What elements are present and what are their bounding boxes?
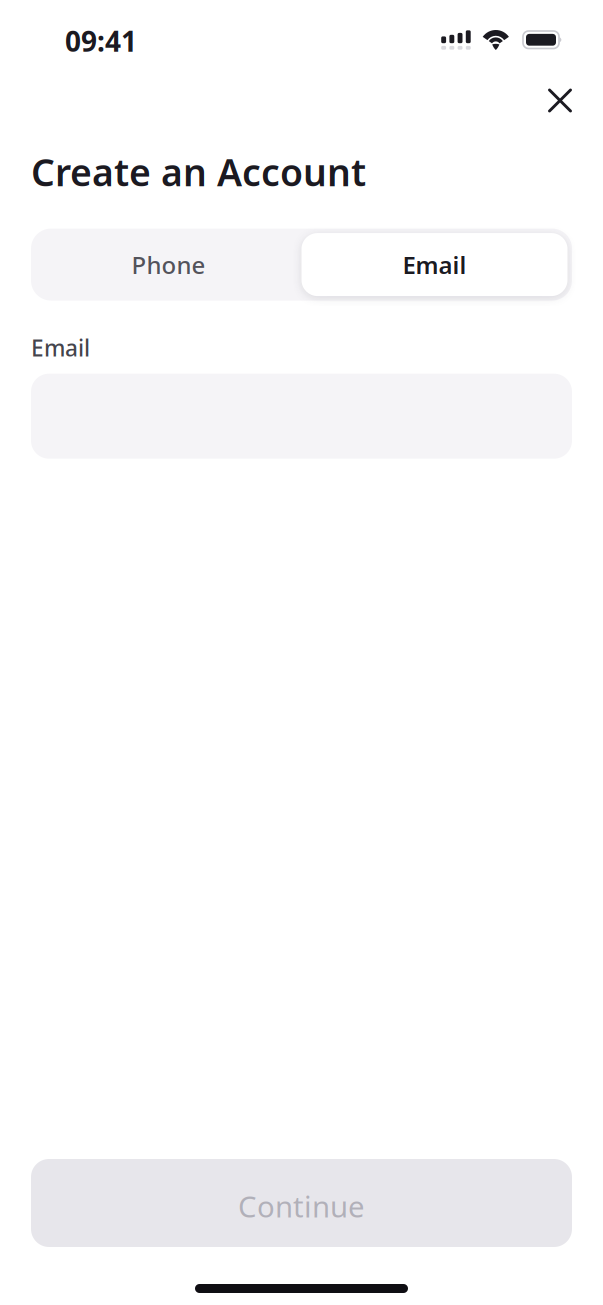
button[interactable]: Phone: [35, 233, 301, 296]
staticText: Email: [402, 249, 466, 280]
button[interactable]: Close: [538, 78, 582, 122]
button[interactable]: Continue: [31, 1159, 572, 1247]
button[interactable]: Email: [301, 233, 567, 296]
staticText: Phone: [131, 249, 205, 280]
staticText: Continue: [238, 1186, 365, 1225]
staticText: 09:41: [65, 22, 137, 60]
staticText: Create an Account: [31, 147, 366, 197]
staticText: Email: [31, 333, 90, 363]
